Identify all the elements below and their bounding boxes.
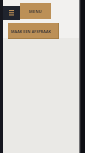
button[interactable]: MENU [20, 3, 51, 19]
button[interactable] [3, 6, 20, 20]
staticText: MENU [29, 9, 43, 14]
staticText: MAAK EEN AFSPRAAK [11, 29, 52, 34]
button[interactable]: MAAK EEN AFSPRAAK [8, 23, 59, 39]
